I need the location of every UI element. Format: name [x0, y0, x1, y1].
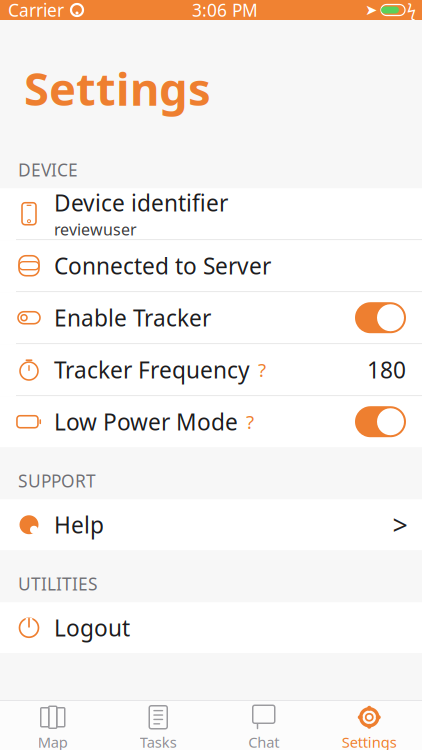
staticText: DEVICE: [18, 158, 78, 181]
staticText: 180: [367, 355, 406, 385]
button[interactable]: Low Power Mode: [0, 396, 422, 447]
staticText: Chat: [248, 732, 279, 750]
staticText: Tasks: [140, 732, 177, 750]
button[interactable]: Enable Tracker: [0, 292, 422, 343]
staticText: Help: [54, 510, 104, 540]
button[interactable]: Map: [0, 701, 105, 750]
staticText: ?: [258, 357, 266, 382]
button[interactable]: Settings: [316, 701, 422, 750]
staticText: Settings: [342, 732, 397, 750]
staticText: Logout: [54, 613, 130, 643]
staticText: reviewuser: [54, 219, 137, 240]
staticText: ?: [246, 409, 254, 434]
button[interactable]: Device identifier: [0, 188, 422, 239]
staticText: Settings: [24, 58, 211, 118]
staticText: Enable Tracker: [54, 303, 211, 333]
staticText: Carrier: [8, 0, 64, 21]
staticText: Low Power Mode: [54, 407, 238, 437]
staticText: Connected to Server: [54, 251, 271, 281]
staticText: >: [392, 507, 407, 542]
staticText: Device identifier: [54, 187, 228, 218]
button[interactable]: Logout: [0, 602, 422, 653]
button[interactable]: Tasks: [105, 701, 211, 750]
button[interactable]: Tracker Frequency: [0, 344, 422, 395]
staticText: Map: [38, 732, 68, 750]
button[interactable]: Connected to Server: [0, 240, 422, 291]
staticText: ➤: [365, 2, 377, 18]
staticText: Tracker Frequency: [54, 355, 250, 385]
button[interactable]: Chat: [211, 701, 316, 750]
staticText: ϟ: [407, 0, 416, 21]
button[interactable]: Help: [0, 499, 422, 550]
staticText: SUPPORT: [18, 469, 96, 492]
staticText: UTILITIES: [18, 572, 98, 595]
staticText: 3:06 PM: [192, 0, 258, 21]
